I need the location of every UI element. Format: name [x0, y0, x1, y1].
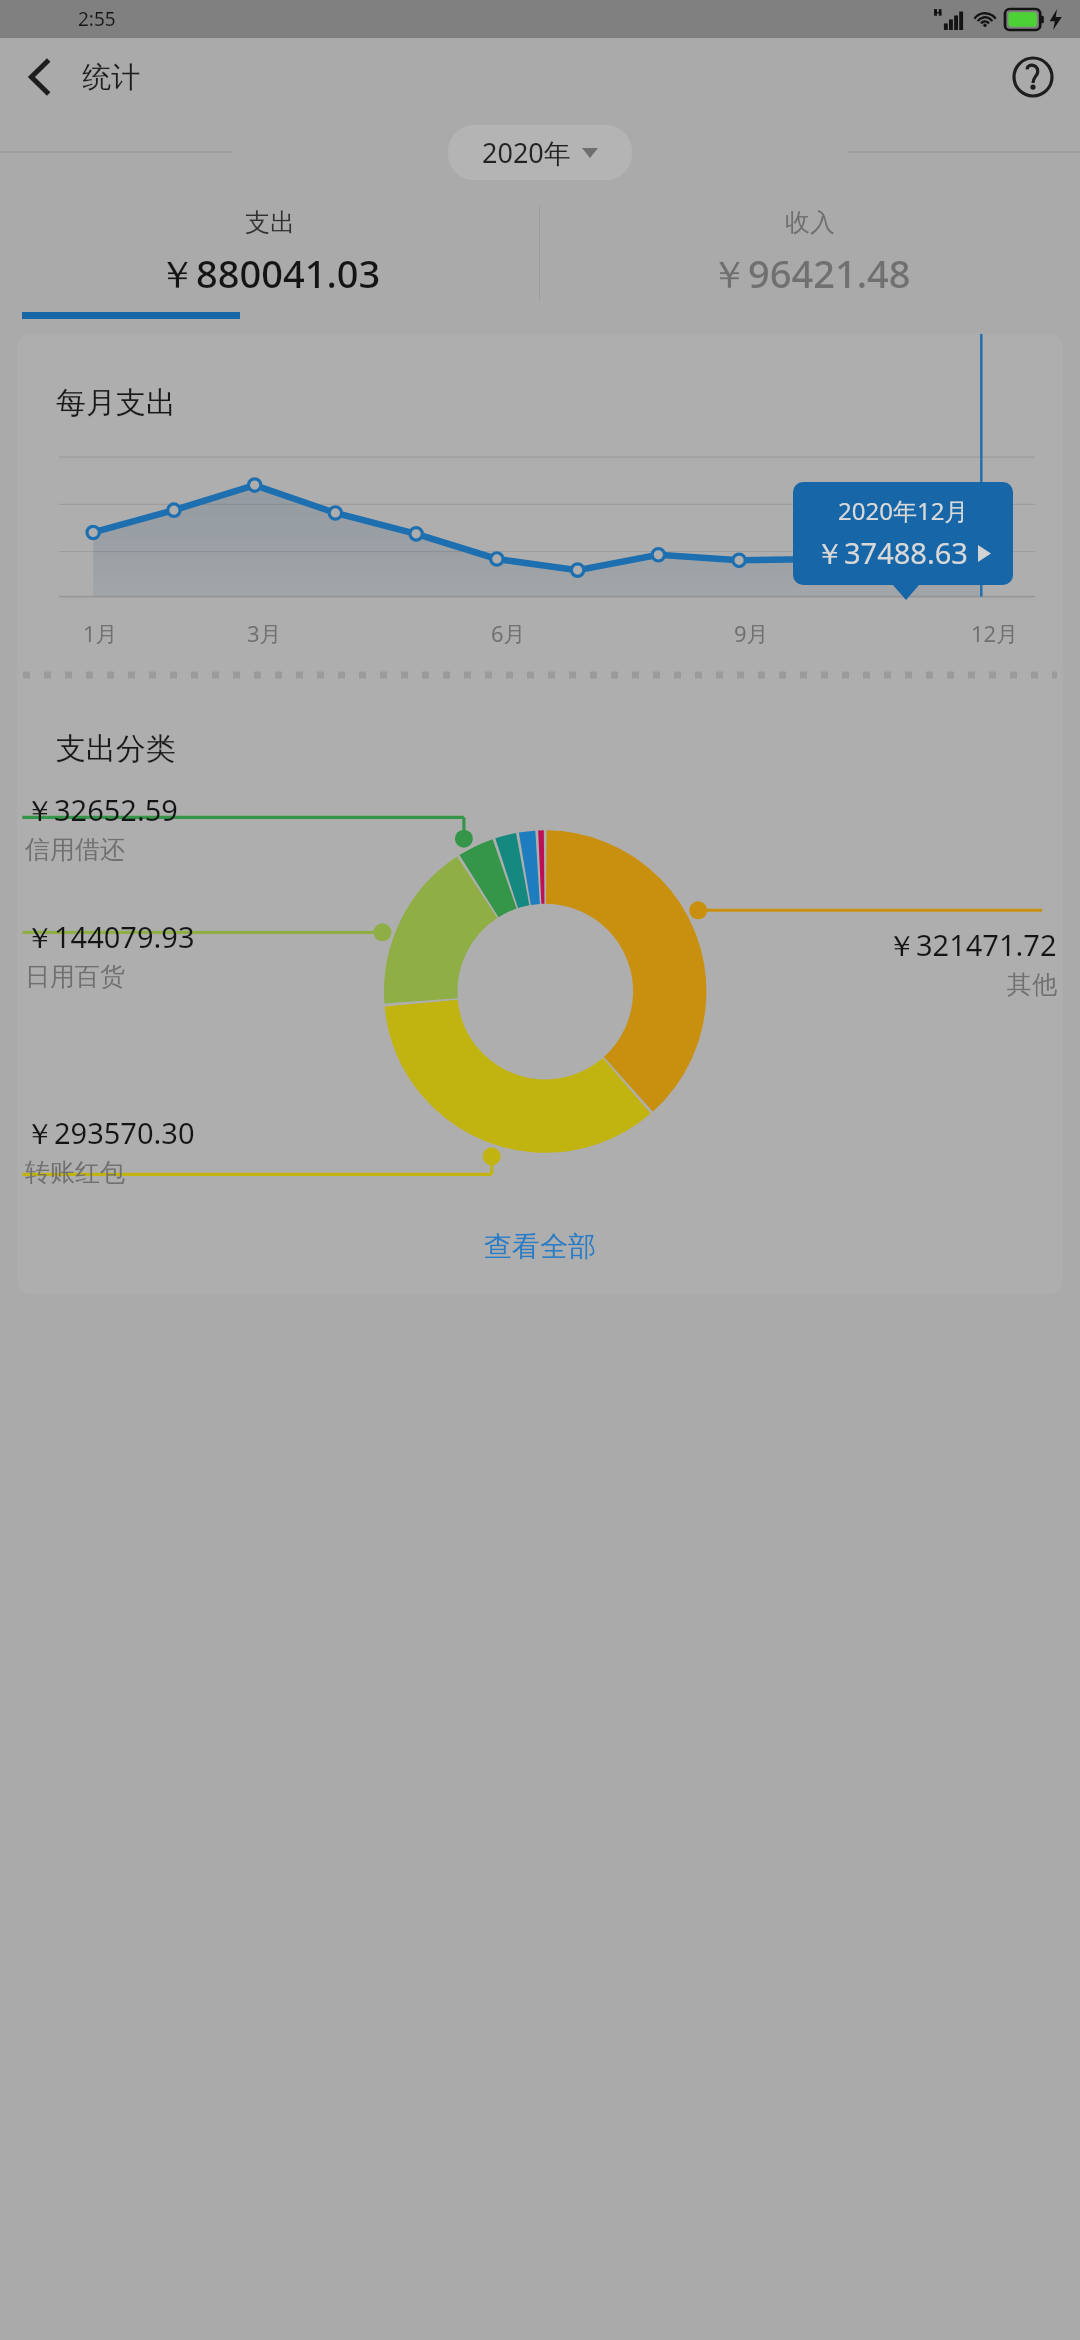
staticText: 其他 — [1007, 969, 1057, 1000]
staticText: 2020年 — [482, 134, 571, 171]
staticText: 9月 — [734, 618, 769, 648]
staticText: 统计 — [82, 59, 140, 96]
staticText: ￥321471.72 — [887, 925, 1057, 965]
staticText: 6月 — [491, 618, 526, 648]
button[interactable]: Help — [1004, 48, 1062, 106]
staticText: 每月支出 — [56, 384, 176, 422]
button[interactable]: 2020年 — [448, 125, 632, 180]
staticText: ￥37488.63 — [815, 533, 968, 573]
button[interactable]: 每月支出 — [17, 334, 1063, 664]
button[interactable]: 收入 — [540, 194, 1080, 312]
staticText: ￥880041.03 — [158, 247, 381, 299]
staticText: 2020年12月 — [838, 494, 969, 527]
staticText: 12月 — [971, 618, 1019, 648]
staticText: ￥32652.59 — [25, 790, 178, 830]
staticText: 信用借还 — [25, 834, 125, 865]
staticText: ￥96421.48 — [710, 247, 911, 299]
button[interactable]: 支出 — [0, 194, 539, 312]
staticText: 转账红包 — [25, 1157, 125, 1188]
staticText: 支出 — [245, 207, 295, 238]
staticText: 支出分类 — [56, 730, 176, 768]
button[interactable]: Back — [10, 46, 72, 108]
staticText: 3月 — [247, 618, 282, 648]
staticText: 收入 — [785, 207, 835, 238]
staticText: ￥144079.93 — [25, 917, 195, 957]
staticText: 1月 — [83, 618, 118, 648]
button[interactable]: 查看全部 — [17, 1198, 1063, 1294]
staticText: 2:55 — [78, 6, 116, 32]
staticText: 查看全部 — [484, 1229, 596, 1264]
button[interactable]: 2020年12月 — [793, 482, 1013, 585]
staticText: 日用百货 — [25, 961, 125, 992]
staticText: ￥293570.30 — [25, 1113, 195, 1153]
